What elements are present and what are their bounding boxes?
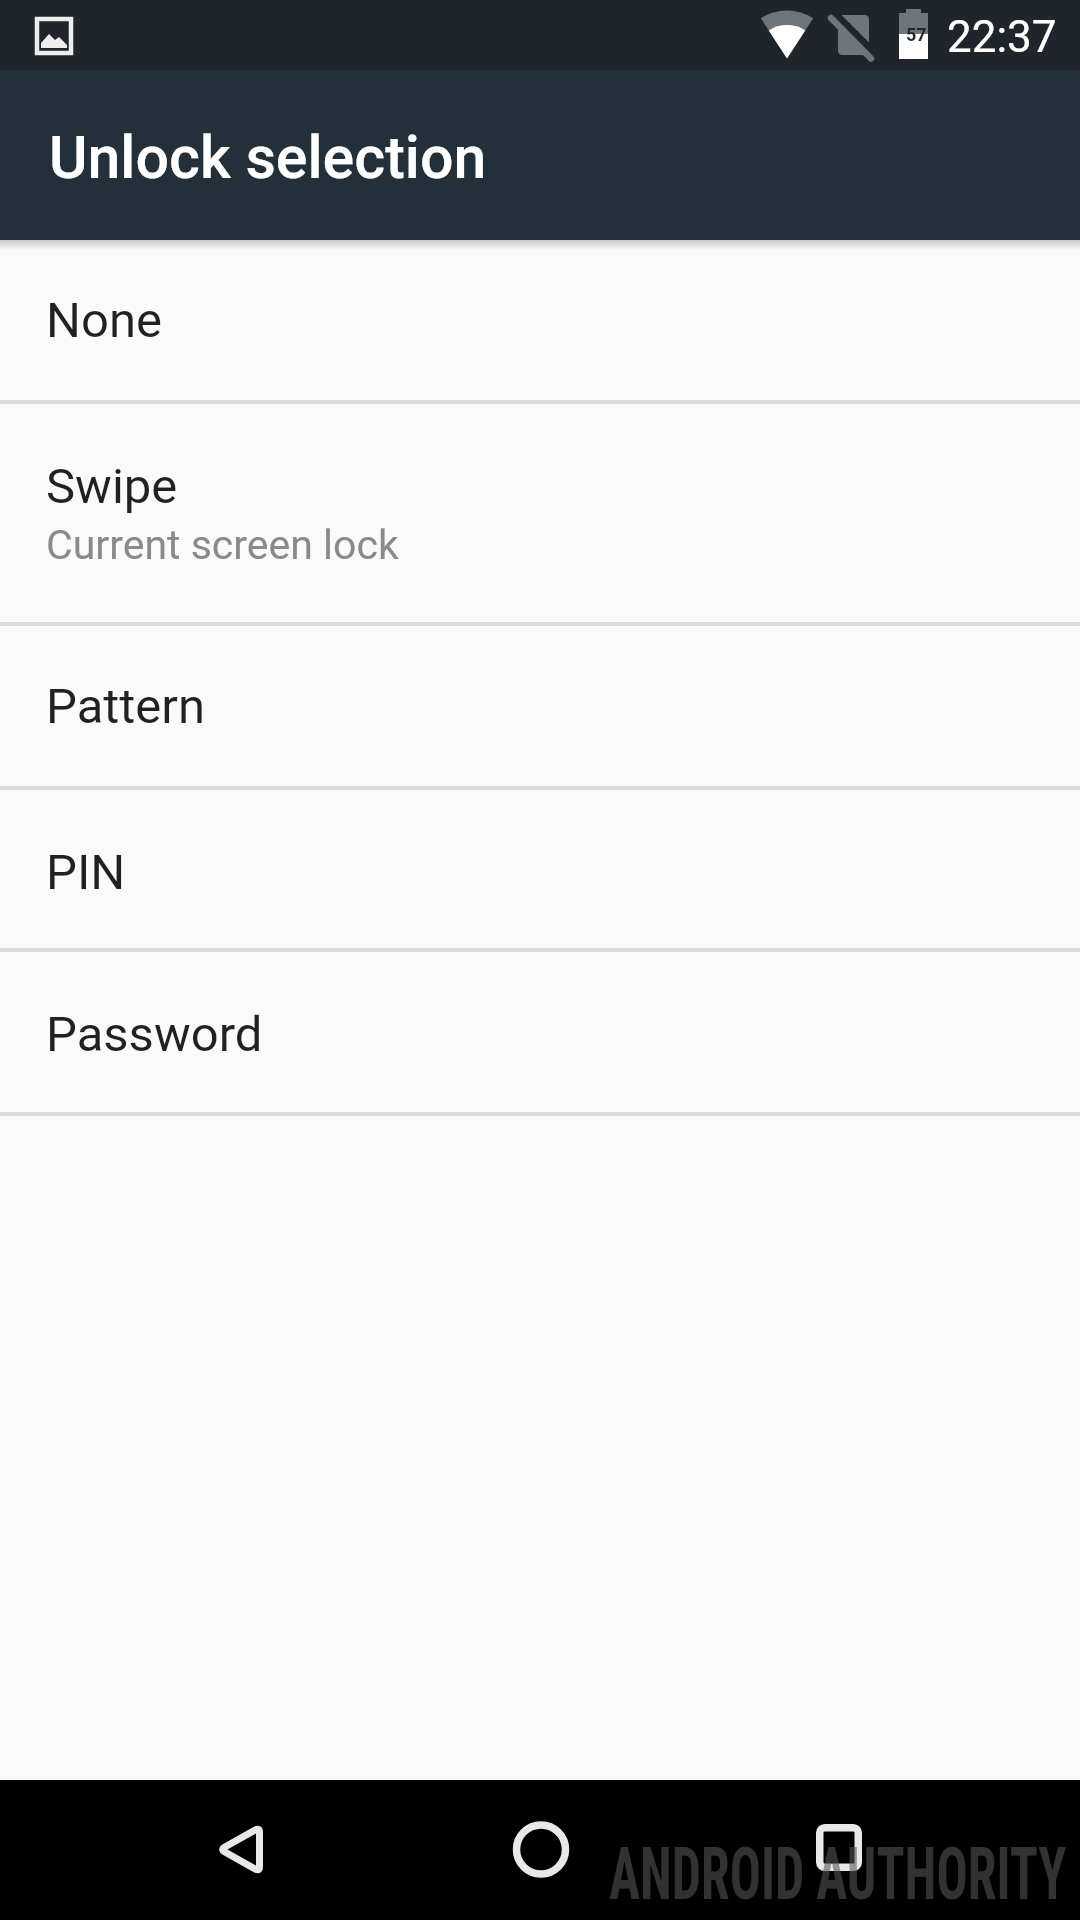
- staticText: None: [46, 292, 162, 349]
- button[interactable]: PIN: [0, 790, 1080, 948]
- staticText: Unlock selection: [49, 123, 487, 192]
- button[interactable]: [720, 1780, 1080, 1920]
- button[interactable]: None: [0, 240, 1080, 400]
- staticText: ANDROID AUTHORITY: [609, 1832, 1067, 1916]
- button[interactable]: Swipe: [0, 404, 1080, 622]
- staticText: PIN: [46, 844, 126, 901]
- staticText: 57: [906, 24, 927, 45]
- staticText: Pattern: [46, 678, 206, 735]
- button[interactable]: Pattern: [0, 626, 1080, 786]
- button[interactable]: Password: [0, 952, 1080, 1112]
- button[interactable]: [360, 1780, 720, 1920]
- staticText: Password: [46, 1006, 263, 1063]
- button[interactable]: [0, 1780, 360, 1920]
- staticText: Swipe: [46, 458, 178, 515]
- staticText: Current screen lock: [46, 521, 399, 569]
- staticText: 22:37: [947, 11, 1057, 63]
